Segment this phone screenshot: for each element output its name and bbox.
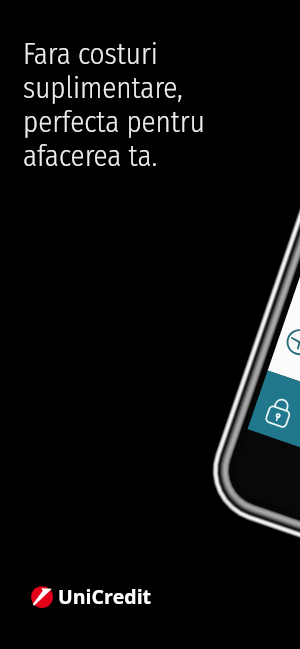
button[interactable]: UniCredit <box>29 584 155 610</box>
staticText: UniCredit <box>58 583 152 609</box>
staticText: Fara costuri suplimentare, perfecta pent… <box>23 37 205 174</box>
